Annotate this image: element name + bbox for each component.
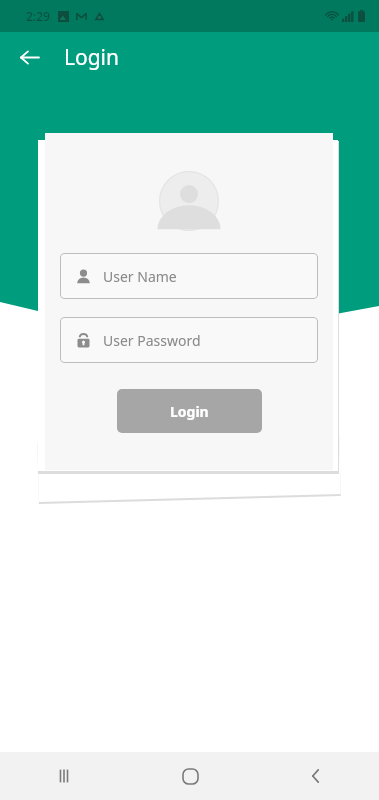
staticText: User Password: [103, 331, 201, 350]
button[interactable]: Back: [253, 752, 379, 800]
button[interactable]: Recents: [0, 752, 127, 800]
button[interactable]: Back: [10, 38, 48, 76]
button[interactable]: User Name: [60, 253, 318, 299]
staticText: User Name: [103, 267, 177, 286]
staticText: 2:29: [26, 8, 50, 24]
button[interactable]: Login: [117, 389, 262, 433]
button[interactable]: User Password: [60, 317, 318, 363]
staticText: Login: [64, 43, 120, 72]
button[interactable]: Home: [127, 752, 253, 800]
staticText: Login: [170, 402, 209, 421]
